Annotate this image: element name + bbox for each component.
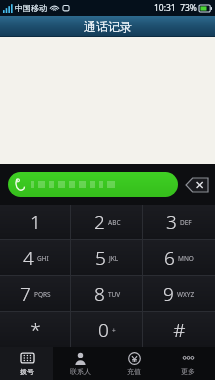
staticText: 4 <box>23 245 34 271</box>
staticText: MNO <box>178 254 194 263</box>
staticText: PQRS <box>34 290 51 299</box>
staticText: 2 <box>94 209 105 235</box>
staticText: JKL <box>109 254 119 263</box>
button[interactable]: 5 <box>71 240 143 275</box>
staticText: 10:31 73% <box>154 2 197 14</box>
staticText: 通话记录 <box>84 19 132 34</box>
staticText: 充值 <box>127 367 141 376</box>
staticText: 拨号 <box>20 367 34 376</box>
button[interactable]: 4 <box>0 240 71 275</box>
button[interactable]: 3 <box>143 205 215 239</box>
staticText: DEF <box>180 218 192 227</box>
button[interactable]: 9 <box>143 276 215 311</box>
button[interactable]: 0 <box>71 312 143 347</box>
staticText: 6 <box>164 245 175 271</box>
staticText: 5 <box>95 245 106 271</box>
staticText: TUV <box>108 290 121 299</box>
button[interactable]: * <box>0 312 71 347</box>
button[interactable]: 8 <box>71 276 143 311</box>
staticText: 7 <box>20 281 31 307</box>
button[interactable]: 更多 <box>161 347 215 380</box>
button[interactable]: 联系人 <box>53 347 107 380</box>
button[interactable]: 2 <box>71 205 143 239</box>
staticText: 9 <box>163 281 174 307</box>
button[interactable]: 7 <box>0 276 71 311</box>
staticText: 中国移动 <box>15 3 47 13</box>
staticText: 更多 <box>181 367 195 376</box>
staticText: # <box>173 317 186 343</box>
staticText: GHI <box>37 254 49 263</box>
staticText: 0 <box>98 317 109 343</box>
button[interactable] <box>8 172 178 197</box>
staticText: 8 <box>94 281 105 307</box>
button[interactable]: Delete <box>183 174 210 196</box>
staticText: * <box>30 317 41 343</box>
staticText: 1 <box>30 209 41 235</box>
button[interactable]: 6 <box>143 240 215 275</box>
button[interactable]: 拨号 <box>0 347 53 380</box>
staticText: WXYZ <box>177 290 195 299</box>
button[interactable]: 充值 <box>107 347 161 380</box>
button[interactable]: 1 <box>0 205 71 239</box>
staticText: 联系人 <box>70 367 91 376</box>
staticText: 3 <box>166 209 177 235</box>
button[interactable]: # <box>143 312 215 347</box>
staticText: + <box>112 326 116 335</box>
staticText: ABC <box>108 218 121 227</box>
